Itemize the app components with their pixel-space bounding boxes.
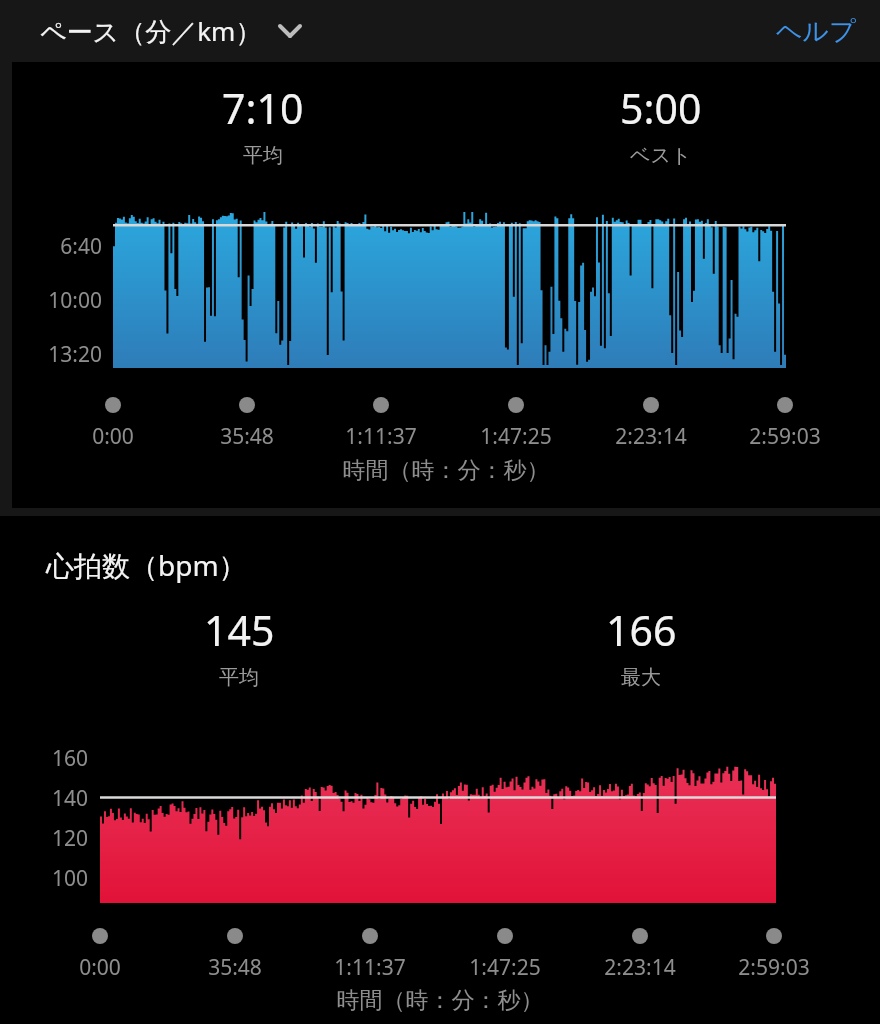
staticText: 2:59:03 [723, 422, 847, 451]
staticText: 心拍数（bpm） [46, 546, 247, 584]
staticText: 160 [26, 744, 88, 773]
staticText: 35:48 [173, 953, 297, 982]
staticText: 1:47:25 [454, 422, 578, 451]
staticText: 2:59:03 [712, 953, 836, 982]
staticText: 120 [26, 824, 88, 853]
staticText: 5:00 [620, 80, 702, 136]
staticText: 10:00 [26, 286, 102, 315]
staticText: 0:00 [38, 953, 162, 982]
button[interactable]: ヘルプ [770, 9, 862, 54]
staticText: 平均 [243, 143, 283, 168]
staticText: 1:47:25 [443, 953, 567, 982]
button[interactable]: 心拍数（bpm） [40, 540, 253, 590]
staticText: 7:10 [222, 80, 304, 136]
staticText: 1:11:37 [308, 953, 432, 982]
staticText: 1:11:37 [319, 422, 443, 451]
staticText: 最大 [621, 665, 661, 690]
staticText: 35:48 [185, 422, 309, 451]
staticText: 140 [26, 784, 88, 813]
staticText: ヘルプ [776, 15, 856, 48]
staticText: 0:00 [51, 422, 175, 451]
staticText: 100 [26, 864, 88, 893]
staticText: 6:40 [26, 232, 102, 261]
staticText: 平均 [219, 665, 259, 690]
staticText: 13:20 [26, 340, 102, 369]
staticText: 145 [204, 602, 275, 658]
staticText: ベスト [630, 143, 692, 168]
other: Change metric [276, 17, 304, 45]
button[interactable]: ペース（分／km） [34, 7, 310, 55]
staticText: ペース（分／km） [40, 13, 262, 49]
staticText: 2:23:14 [589, 422, 713, 451]
staticText: 時間（時：分：秒） [12, 456, 880, 485]
staticText: 166 [606, 602, 677, 658]
staticText: 時間（時：分：秒） [0, 986, 880, 1015]
staticText: 2:23:14 [578, 953, 702, 982]
